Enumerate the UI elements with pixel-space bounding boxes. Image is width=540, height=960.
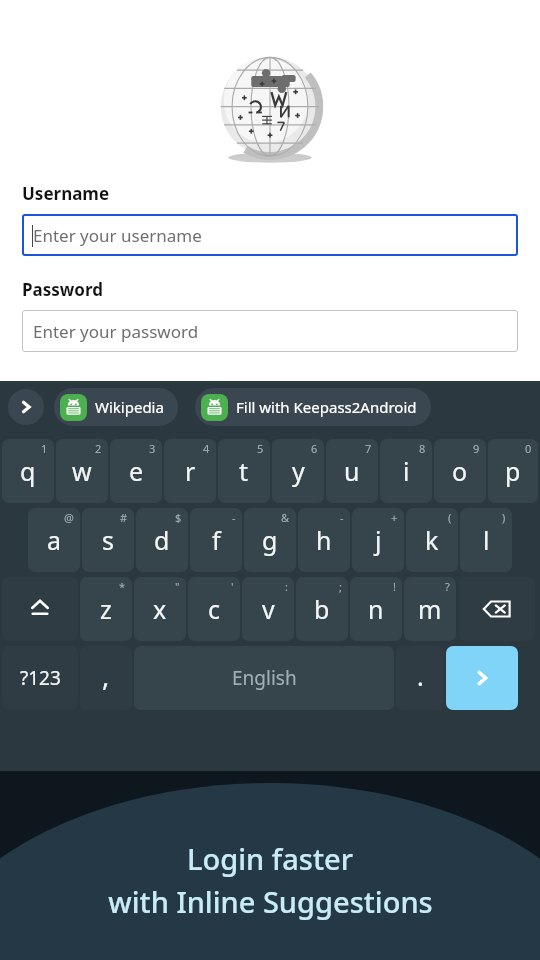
staticText: ' [231, 579, 234, 594]
staticText: * [119, 579, 126, 594]
button[interactable]: Enter your username [22, 214, 518, 256]
button[interactable]: m [404, 577, 456, 641]
button[interactable]: a [28, 508, 80, 572]
staticText: b [314, 592, 330, 626]
button[interactable]: Backspace [459, 577, 535, 641]
button[interactable]: English [134, 646, 394, 710]
staticText: 6 [311, 441, 318, 456]
staticText: Login faster [187, 839, 353, 878]
staticText: y [292, 454, 305, 488]
button[interactable]: ?123 [2, 646, 78, 710]
staticText: x [153, 592, 167, 626]
staticText: i [403, 454, 410, 488]
staticText: a [47, 523, 62, 557]
staticText: 8 [419, 441, 426, 456]
button[interactable]: x [134, 577, 186, 641]
staticText: . [417, 659, 424, 693]
staticText: - [232, 510, 236, 525]
staticText: w [72, 454, 92, 488]
staticText: p [505, 454, 521, 488]
button[interactable]: d [136, 508, 188, 572]
button[interactable]: h [298, 508, 350, 572]
staticText: g [262, 523, 278, 557]
staticText: v [262, 592, 275, 626]
staticText: f [212, 523, 221, 557]
button[interactable]: b [296, 577, 348, 641]
staticText: Wikipedia [95, 397, 164, 417]
button[interactable]: u [326, 439, 378, 503]
staticText: z [100, 592, 112, 626]
staticText: 2 [95, 441, 102, 456]
staticText: j [375, 523, 382, 557]
staticText: r [185, 454, 196, 488]
staticText: Enter your password [33, 320, 199, 343]
button[interactable]: Fill with Keepass2Android [195, 388, 431, 426]
staticText: t [239, 454, 249, 488]
button[interactable]: k [406, 508, 458, 572]
staticText: Password [22, 278, 103, 301]
staticText: Fill with Keepass2Android [236, 397, 417, 417]
staticText: h [316, 523, 332, 557]
staticText: d [154, 523, 170, 557]
button[interactable]: p [488, 439, 538, 503]
button[interactable]: y [272, 439, 324, 503]
staticText: k [425, 523, 439, 557]
staticText: ! [393, 579, 396, 594]
staticText: c [208, 592, 221, 626]
staticText: l [483, 523, 490, 557]
button[interactable]: v [242, 577, 294, 641]
button[interactable]: . [396, 646, 444, 710]
button[interactable]: o [434, 439, 486, 503]
staticText: Username [22, 182, 110, 205]
staticText: 3 [149, 441, 156, 456]
staticText: 7 [365, 441, 372, 456]
staticText: English [232, 665, 297, 691]
button[interactable]: e [110, 439, 162, 503]
staticText: u [344, 454, 360, 488]
staticText: $ [175, 510, 182, 525]
staticText: 4 [203, 441, 210, 456]
button[interactable]: r [164, 439, 216, 503]
button[interactable]: , [80, 646, 132, 710]
button[interactable]: c [188, 577, 240, 641]
staticText: & [281, 510, 290, 525]
staticText: ( [448, 510, 452, 525]
button[interactable]: Enter [446, 646, 518, 710]
staticText: Enter your username [33, 224, 202, 247]
button[interactable]: Expand suggestions [8, 389, 44, 425]
staticText: m [418, 592, 442, 626]
button[interactable]: l [460, 508, 512, 572]
button[interactable]: Enter your password [22, 310, 518, 352]
button[interactable]: i [380, 439, 432, 503]
staticText: : [285, 579, 288, 594]
staticText: ; [339, 579, 342, 594]
staticText: 1 [41, 441, 48, 456]
staticText: , [102, 657, 110, 694]
button[interactable]: w [56, 439, 108, 503]
staticText: e [129, 454, 144, 488]
button[interactable]: Shift [2, 577, 78, 641]
button[interactable]: g [244, 508, 296, 572]
button[interactable]: z [80, 577, 132, 641]
staticText: with Inline Suggestions [108, 882, 433, 921]
button[interactable]: n [350, 577, 402, 641]
staticText: @ [64, 510, 74, 525]
staticText: n [368, 592, 384, 626]
staticText: ?123 [20, 665, 61, 691]
staticText: 9 [473, 441, 480, 456]
staticText: ? [445, 579, 450, 594]
staticText: # [120, 510, 128, 525]
staticText: ) [502, 510, 506, 525]
button[interactable]: j [352, 508, 404, 572]
staticText: + [391, 510, 398, 525]
button[interactable]: s [82, 508, 134, 572]
button[interactable]: q [2, 439, 54, 503]
button[interactable]: t [218, 439, 270, 503]
staticText: " [175, 579, 180, 594]
staticText: o [452, 454, 468, 488]
button[interactable]: f [190, 508, 242, 572]
button[interactable]: Wikipedia [54, 388, 178, 426]
staticText: q [20, 454, 36, 488]
staticText: s [102, 523, 114, 557]
staticText: 0 [525, 441, 532, 456]
